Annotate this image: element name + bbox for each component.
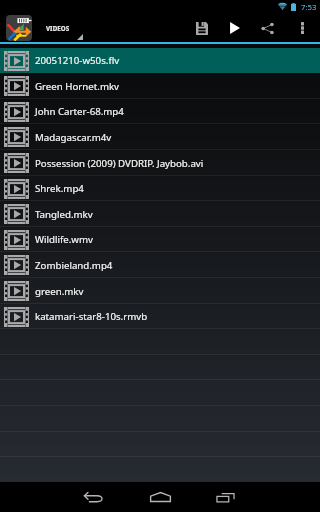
button[interactable]: Home (136, 482, 185, 512)
button[interactable]: John Carter-68.mp4 (0, 99, 320, 124)
staticText: 7:53 (301, 2, 317, 13)
button[interactable]: Madagascar.m4v (0, 124, 320, 150)
staticText: 20051210-w50s.flv (35, 54, 120, 67)
button[interactable]: Possession (2009) DVDRIP. Jaybob.avi (0, 150, 320, 176)
button[interactable]: green.mkv (0, 278, 320, 304)
staticText: Madagascar.m4v (35, 131, 112, 144)
staticText: John Carter-68.mp4 (35, 105, 124, 118)
button[interactable]: katamari-star8-10s.rmvb (0, 304, 320, 329)
staticText: katamari-star8-10s.rmvb (35, 310, 148, 323)
button[interactable]: Wildlife.wmv (0, 227, 320, 252)
button[interactable]: Save (188, 14, 216, 42)
staticText: VIDEOS (46, 24, 70, 32)
staticText: Green Hornet.mkv (35, 80, 120, 93)
staticText: green.mkv (35, 285, 84, 298)
button[interactable]: Back (70, 482, 116, 512)
staticText: Possession (2009) DVDRIP. Jaybob.avi (35, 157, 204, 170)
button[interactable]: Recent apps (202, 482, 249, 512)
button[interactable]: Shrek.mp4 (0, 176, 320, 201)
button[interactable]: Green Hornet.mkv (0, 73, 320, 99)
staticText: Zombieland.mp4 (35, 259, 113, 272)
button[interactable]: Zombieland.mp4 (0, 252, 320, 278)
button[interactable]: Video player (6, 15, 32, 41)
staticText: Shrek.mp4 (35, 182, 84, 195)
button[interactable]: More options (293, 14, 312, 42)
button[interactable]: Share (253, 14, 282, 42)
staticText: Tangled.mkv (35, 208, 93, 221)
button[interactable]: Play (220, 14, 248, 42)
button[interactable]: Tangled.mkv (0, 201, 320, 227)
staticText: Wildlife.wmv (35, 233, 93, 246)
button[interactable]: VIDEOS tab (40, 14, 320, 42)
button[interactable]: 20051210-w50s.flv (0, 48, 320, 73)
